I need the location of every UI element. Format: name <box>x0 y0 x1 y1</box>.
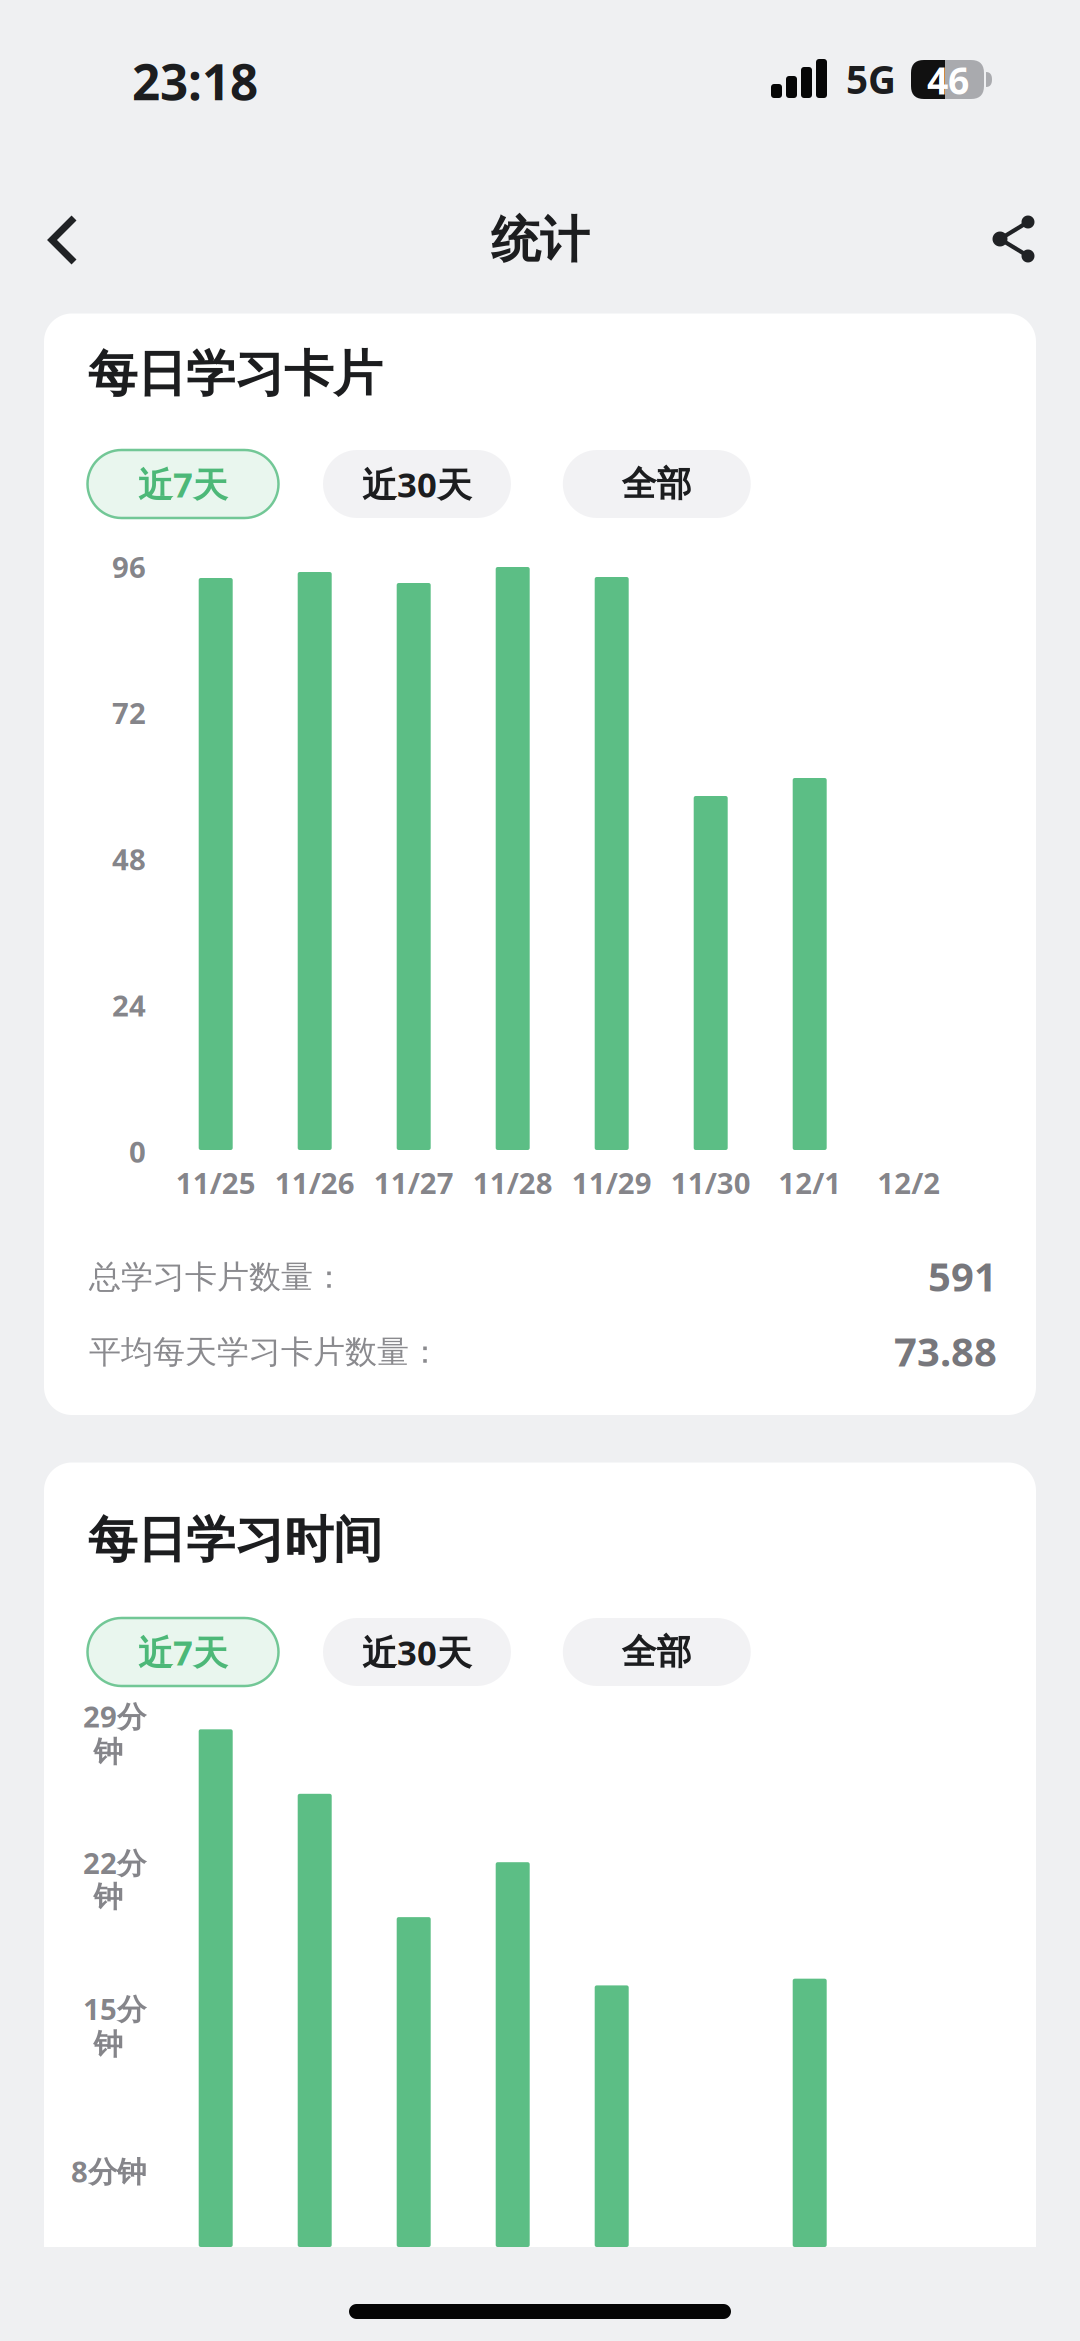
staticText: 11/25 <box>176 1163 256 1202</box>
staticText: 48 <box>112 839 146 878</box>
button[interactable]: 全部 <box>563 1618 751 1686</box>
staticText: 5G <box>846 53 896 105</box>
staticText: 22分 <box>83 1843 146 1882</box>
staticText: 12/2 <box>877 1163 940 1202</box>
staticText: 11/26 <box>275 1163 355 1202</box>
staticText: 总学习卡片数量： <box>89 1257 345 1297</box>
staticText: 73.88 <box>894 1324 997 1377</box>
staticText: 23:18 <box>132 48 258 114</box>
staticText: 11/27 <box>374 1163 454 1202</box>
staticText: 全部 <box>622 1631 692 1673</box>
staticText: 近7天 <box>138 1629 228 1675</box>
staticText: 钟 <box>93 1734 122 1770</box>
staticText: 11/28 <box>473 1163 553 1202</box>
staticText: 12/1 <box>778 1163 841 1202</box>
staticText: 11/29 <box>572 1163 652 1202</box>
staticText: 平均每天学习卡片数量： <box>89 1332 441 1372</box>
staticText: 29分 <box>83 1696 146 1735</box>
staticText: 近7天 <box>138 461 228 507</box>
staticText: 每日学习时间 <box>88 1510 382 1570</box>
staticText: 72 <box>112 693 146 732</box>
staticText: 24 <box>112 986 146 1025</box>
staticText: 46 <box>927 55 969 105</box>
staticText: 全部 <box>622 463 692 505</box>
staticText: 统计 <box>491 210 589 270</box>
staticText: 11/30 <box>671 1163 751 1202</box>
staticText: 近30天 <box>362 461 472 507</box>
staticText: 0 <box>129 1132 146 1171</box>
button[interactable]: 全部 <box>563 450 751 518</box>
staticText: 8分钟 <box>71 2151 146 2190</box>
button[interactable]: 近7天 <box>87 1618 278 1686</box>
staticText: 近30天 <box>362 1629 472 1675</box>
staticText: 15分 <box>83 1989 146 2028</box>
staticText: 96 <box>112 547 146 586</box>
staticText: 每日学习卡片 <box>88 344 382 404</box>
button[interactable]: Share <box>974 199 1054 279</box>
staticText: 591 <box>928 1249 997 1302</box>
staticText: 钟 <box>93 2026 122 2062</box>
staticText: 钟 <box>93 1879 122 1915</box>
button[interactable]: 近30天 <box>323 1618 511 1686</box>
button[interactable]: 近7天 <box>87 450 278 518</box>
button[interactable]: Back <box>23 200 103 280</box>
button[interactable]: 近30天 <box>323 450 511 518</box>
